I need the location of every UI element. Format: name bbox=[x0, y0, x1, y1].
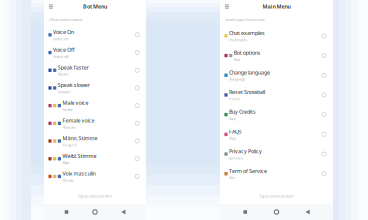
staticText: Buy Credits bbox=[229, 108, 256, 115]
staticText: /slower bbox=[58, 89, 71, 94]
staticText: /fmale bbox=[62, 178, 73, 183]
button[interactable]: Voice Off bbox=[44, 44, 146, 61]
button[interactable]: Home bbox=[270, 206, 282, 218]
button[interactable]: Back bbox=[117, 206, 129, 218]
button[interactable]: Back bbox=[302, 206, 314, 218]
button[interactable]: Voice On bbox=[44, 26, 146, 44]
staticText: /examples bbox=[229, 37, 247, 42]
button[interactable]: Female voice bbox=[44, 114, 146, 132]
button[interactable]: Change language bbox=[220, 65, 333, 85]
staticText: /faster bbox=[58, 71, 69, 77]
staticText: Voice Off bbox=[53, 46, 75, 53]
button[interactable]: Recents bbox=[239, 206, 251, 218]
button[interactable]: Chat examples bbox=[220, 26, 333, 46]
staticText: /reset bbox=[229, 96, 239, 101]
staticText: Male voice bbox=[62, 99, 88, 106]
staticText: /male bbox=[62, 107, 72, 112]
staticText: Voix masculin bbox=[62, 170, 95, 177]
staticText: /mgerm bbox=[62, 142, 77, 147]
staticText: /bot bbox=[234, 57, 240, 62]
button[interactable]: Weibl. Stimme bbox=[44, 150, 146, 168]
button[interactable]: Menu bbox=[225, 2, 233, 10]
staticText: Main Menu bbox=[262, 3, 290, 10]
staticText: Voice On bbox=[53, 28, 74, 35]
staticText: send a type /command bbox=[225, 17, 264, 22]
button[interactable]: Bot options bbox=[220, 46, 333, 65]
staticText: /faq bbox=[229, 135, 235, 141]
staticText: / Bot customization bbox=[49, 17, 82, 22]
staticText: /fger bbox=[62, 160, 70, 165]
staticText: Tap to select an item bbox=[77, 193, 112, 199]
button[interactable]: Speak faster bbox=[44, 61, 146, 79]
staticText: /buy bbox=[229, 116, 236, 121]
button[interactable]: Term of Service bbox=[220, 164, 333, 184]
staticText: Speak faster bbox=[58, 64, 89, 71]
button[interactable]: Voix masculin bbox=[44, 168, 146, 185]
staticText: Bot Menu bbox=[83, 3, 107, 10]
staticText: /tos bbox=[229, 175, 235, 180]
button[interactable]: Home bbox=[89, 206, 101, 218]
staticText: Change language bbox=[229, 69, 270, 76]
staticText: /female bbox=[62, 124, 75, 130]
staticText: Weibl. Stimme bbox=[62, 152, 96, 159]
button[interactable]: Reset Snowball bbox=[220, 85, 333, 105]
staticText: Term of Service bbox=[229, 167, 267, 174]
staticText: /voice on bbox=[53, 36, 68, 41]
button[interactable]: Buy Credits bbox=[220, 105, 333, 124]
staticText: Privacy Policy bbox=[229, 148, 262, 155]
button[interactable]: Menu bbox=[49, 2, 57, 10]
button[interactable]: FAQs bbox=[220, 124, 333, 144]
staticText: /privacy bbox=[229, 155, 243, 160]
staticText: Chat examples bbox=[229, 29, 265, 36]
button[interactable]: Männ. Stimme bbox=[44, 132, 146, 150]
staticText: FAQs bbox=[229, 128, 242, 135]
staticText: Reset Snowball bbox=[229, 88, 265, 96]
button[interactable]: Speak slower bbox=[44, 79, 146, 97]
staticText: Männ. Stimme bbox=[62, 135, 97, 142]
staticText: Female voice bbox=[62, 117, 94, 124]
staticText: Tap to select an item bbox=[259, 193, 294, 199]
button[interactable]: Recents bbox=[60, 206, 72, 218]
button[interactable]: Male voice bbox=[44, 97, 146, 114]
button[interactable]: Privacy Policy bbox=[220, 144, 333, 164]
staticText: Speak slower bbox=[58, 81, 90, 89]
staticText: /language bbox=[229, 76, 245, 82]
staticText: Bot options bbox=[234, 49, 261, 56]
staticText: /voice off bbox=[53, 54, 69, 59]
